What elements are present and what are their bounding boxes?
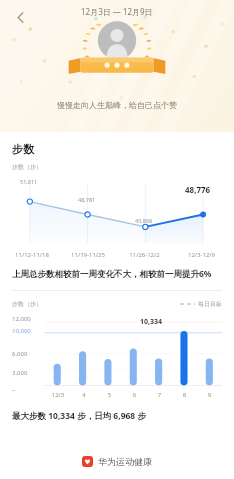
staticText: 45,868 xyxy=(135,217,153,224)
staticText: 8 xyxy=(172,391,197,399)
staticText: 7 xyxy=(147,391,172,399)
staticText: 步数（步） xyxy=(12,300,42,308)
staticText: 10,334 xyxy=(140,317,163,327)
staticText: 0 xyxy=(12,388,16,391)
staticText: 慢慢走向人生巅峰，给自己点个赞 xyxy=(57,100,177,110)
staticText: 3,000 xyxy=(12,369,28,377)
staticText: 华为运动健康 xyxy=(98,456,152,467)
staticText: 12月3日 — 12月9日 xyxy=(81,6,153,17)
staticText: 4 xyxy=(71,391,97,399)
staticText: 48,781 xyxy=(78,196,96,203)
staticText: 12,000 xyxy=(12,315,31,323)
staticText: 51,811 xyxy=(20,178,38,185)
staticText: 9 xyxy=(197,391,222,399)
staticText: 48,776 xyxy=(185,184,211,195)
button[interactable]: Back xyxy=(7,4,33,30)
staticText: 12/3-12/9 xyxy=(173,251,230,259)
staticText: 步数 xyxy=(12,142,34,156)
staticText: 步数（步） xyxy=(12,163,42,171)
staticText: 12/3 xyxy=(45,391,71,399)
staticText: 6,000 xyxy=(12,350,28,358)
staticText: 每日目标 xyxy=(198,300,222,308)
staticText: 11/19-11/25 xyxy=(60,251,116,259)
staticText: 最大步数 10,334 步，日均 6,968 步 xyxy=(12,410,146,422)
staticText: 5 xyxy=(97,391,122,399)
staticText: 6 xyxy=(122,391,147,399)
staticText: 上周总步数相较前一周变化不大，相较前一周提升6% xyxy=(12,268,212,280)
staticText: 10,000 xyxy=(12,327,31,335)
staticText: 11/26-12/2 xyxy=(116,251,173,259)
staticText: 11/12-11/18 xyxy=(4,251,60,259)
button[interactable]: 华为运动健康 xyxy=(0,456,234,467)
